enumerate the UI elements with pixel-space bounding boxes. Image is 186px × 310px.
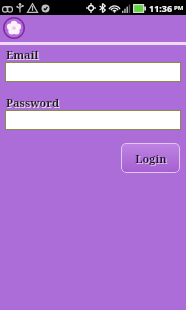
staticText: Email xyxy=(6,47,39,62)
staticText: Password xyxy=(7,96,61,111)
staticText: Login xyxy=(135,151,167,166)
staticText: Email xyxy=(7,48,40,63)
button[interactable]: Login xyxy=(121,143,180,173)
staticText: Login xyxy=(136,152,168,167)
staticText: PM xyxy=(174,4,184,12)
button[interactable] xyxy=(5,110,181,130)
staticText: Password xyxy=(6,95,60,110)
button[interactable]: App logo xyxy=(3,17,25,39)
staticText: 11:36 xyxy=(149,2,173,14)
button[interactable] xyxy=(5,62,181,82)
